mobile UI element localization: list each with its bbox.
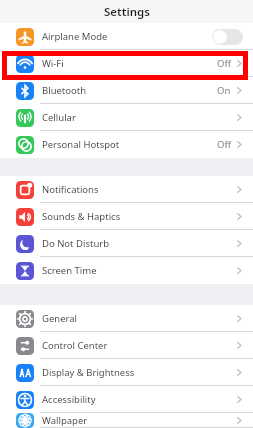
button[interactable]: Accessibility: [0, 386, 253, 413]
staticText: Accessibility: [42, 393, 96, 406]
button[interactable]: Do Not Disturb: [0, 230, 253, 257]
staticText: Off: [217, 57, 231, 70]
staticText: Do Not Disturb: [42, 237, 110, 250]
staticText: Screen Time: [42, 264, 97, 277]
staticText: General: [42, 312, 78, 325]
button[interactable]: Display & Brightness: [0, 359, 253, 386]
button[interactable]: General: [0, 305, 253, 332]
staticText: Wallpaper: [42, 414, 88, 427]
staticText: Display & Brightness: [42, 366, 135, 379]
staticText: Personal Hotspot: [42, 138, 120, 151]
button[interactable]: Notifications: [0, 176, 253, 203]
button[interactable]: Wallpaper: [0, 413, 253, 428]
staticText: Control Center: [42, 339, 108, 352]
button[interactable]: Cellular: [0, 104, 253, 131]
staticText: Off: [217, 138, 231, 151]
staticText: On: [217, 84, 231, 97]
button[interactable]: Sounds & Haptics: [0, 203, 253, 230]
staticText: Notifications: [42, 183, 99, 196]
button[interactable]: Bluetooth: [0, 77, 253, 104]
staticText: Cellular: [42, 111, 76, 124]
staticText: Bluetooth: [42, 84, 87, 97]
button[interactable]: Control Center: [0, 332, 253, 359]
staticText: Sounds & Haptics: [42, 210, 121, 223]
button[interactable]: Airplane Mode toggle: [212, 29, 243, 45]
staticText: Settings: [104, 4, 150, 20]
button[interactable]: Screen Time: [0, 257, 253, 284]
button[interactable]: Airplane Mode: [0, 23, 253, 50]
button[interactable]: Wi-Fi: [0, 50, 253, 77]
button[interactable]: Personal Hotspot: [0, 131, 253, 158]
staticText: Wi-Fi: [42, 57, 64, 70]
staticText: Airplane Mode: [42, 30, 108, 43]
